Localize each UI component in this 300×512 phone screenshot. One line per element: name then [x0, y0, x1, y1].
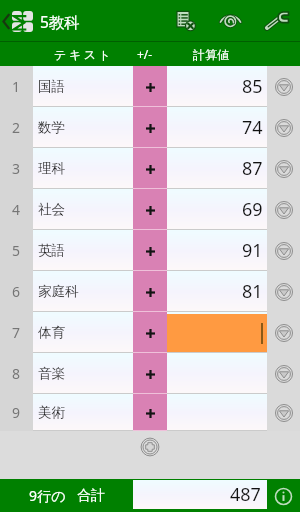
button[interactable]: 6	[0, 271, 300, 312]
staticText: 69	[242, 197, 263, 222]
staticText: 英語	[38, 242, 65, 259]
staticText: 美術	[38, 404, 65, 421]
staticText: テキスト	[54, 47, 114, 62]
button[interactable]: Row menu	[271, 197, 297, 223]
button[interactable]: Toggle sign	[133, 189, 167, 230]
button[interactable]: Add row	[136, 433, 164, 461]
staticText: 家庭科	[38, 283, 79, 300]
staticText: 85	[242, 74, 263, 99]
button[interactable]: 2	[0, 107, 300, 148]
button[interactable]: Navigate up	[0, 1, 33, 41]
button[interactable]: 8	[0, 353, 300, 394]
button[interactable]: Toggle sign	[133, 230, 167, 271]
button[interactable]: Toggle sign	[133, 271, 167, 312]
button[interactable]: Row menu	[271, 400, 297, 426]
staticText: 3	[12, 159, 21, 178]
staticText: 4	[12, 200, 21, 219]
button[interactable]: Settings	[260, 0, 292, 41]
staticText: 6	[12, 282, 21, 301]
button[interactable]: 3	[0, 148, 300, 189]
staticText: 社会	[38, 201, 65, 218]
button[interactable]: 1	[0, 66, 300, 107]
button[interactable]: Row menu	[271, 279, 297, 305]
button[interactable]: Row menu	[271, 320, 297, 346]
button[interactable]: Clear document	[169, 0, 201, 41]
staticText: 91	[242, 238, 263, 263]
staticText: 計算値	[193, 47, 229, 62]
button[interactable]: 5	[0, 230, 300, 271]
button[interactable]: Toggle sign	[133, 107, 167, 148]
button[interactable]: Toggle sign	[133, 394, 167, 431]
staticText: 9	[12, 403, 21, 422]
staticText: 数学	[38, 119, 65, 136]
button[interactable]: 7	[0, 312, 300, 353]
button[interactable]: Toggle sign	[133, 66, 167, 107]
staticText: 5教科	[40, 11, 80, 32]
button[interactable]: Row menu	[271, 156, 297, 182]
staticText: 国語	[38, 78, 65, 95]
staticText: 487	[230, 482, 261, 507]
button[interactable]: Row menu	[271, 361, 297, 387]
button[interactable]: 9	[0, 394, 300, 431]
staticText: 音楽	[38, 365, 65, 382]
button[interactable]: Toggle sign	[133, 148, 167, 189]
button[interactable]: Toggle sign	[133, 353, 167, 394]
staticText: 7	[12, 323, 21, 342]
staticText: 8	[12, 364, 21, 383]
button[interactable]: Preview	[214, 0, 246, 41]
staticText: 合計	[77, 487, 105, 505]
staticText: 81	[242, 279, 263, 304]
button[interactable]: 4	[0, 189, 300, 230]
staticText: 5	[12, 241, 21, 260]
staticText: 理科	[38, 160, 65, 177]
staticText: +/-	[137, 46, 153, 62]
button[interactable]: Row menu	[271, 238, 297, 264]
staticText: 体育	[38, 324, 65, 341]
button[interactable]: Row menu	[271, 74, 297, 100]
staticText: 87	[242, 156, 263, 181]
button[interactable]: Info	[271, 484, 295, 508]
button[interactable]: Row menu	[271, 115, 297, 141]
staticText: 9行の	[29, 486, 66, 505]
staticText: 1	[12, 77, 21, 96]
staticText: 2	[12, 118, 21, 137]
button[interactable]: Toggle sign	[133, 312, 167, 353]
staticText: 74	[242, 115, 263, 140]
